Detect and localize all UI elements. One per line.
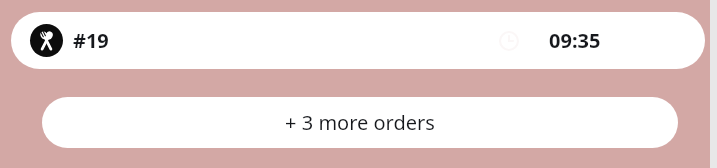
- staticText: #19: [73, 27, 109, 54]
- button[interactable]: Order: [11, 12, 705, 69]
- other: Pickup time: [499, 31, 519, 51]
- button[interactable]: + 3 more orders: [42, 97, 678, 148]
- staticText: + 3 more orders: [285, 109, 435, 136]
- other: Order: [30, 24, 63, 57]
- staticText: 09:35: [549, 27, 601, 54]
